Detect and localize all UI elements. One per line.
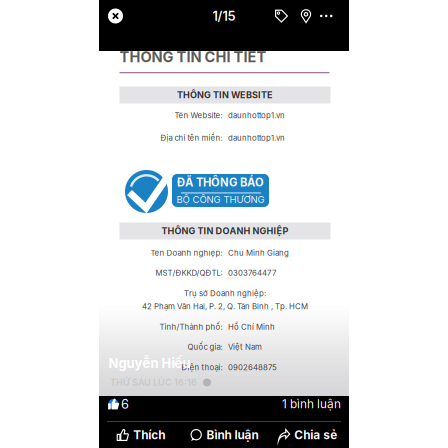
staticText: THỨ SÁU LÚC 16:16	[110, 377, 197, 388]
button[interactable]: Bình luận	[182, 422, 266, 448]
staticText: THÔNG TIN CHI TIẾT	[119, 48, 266, 66]
staticText: Bình luận	[206, 428, 258, 442]
button[interactable]: Location	[298, 8, 314, 24]
staticText: MST/ĐKKD/QĐTL:	[155, 268, 222, 278]
staticText: daunhottop1.vn	[228, 111, 285, 120]
staticText: Hồ Chí Minh	[228, 322, 275, 332]
staticText: Nguyễn Hiếu	[108, 355, 190, 371]
staticText: ĐÃ THÔNG BÁO	[177, 176, 264, 189]
button[interactable]: More options	[319, 8, 337, 24]
staticText: 0303764477	[228, 268, 276, 278]
staticText: Trụ sở Doanh nghiệp:	[184, 289, 266, 298]
staticText: Tỉnh/Thành phố:	[159, 322, 222, 332]
staticText: BỘ CÔNG THƯƠNG	[176, 194, 264, 205]
staticText: daunhottop1.vn	[228, 133, 285, 143]
button[interactable]: Tags	[273, 8, 289, 24]
staticText: Điện thoại:	[181, 363, 222, 372]
staticText: THÔNG TIN DOANH NGHIỆP	[161, 225, 288, 236]
staticText: Quốc gia:	[187, 342, 222, 352]
staticText: Tên Website:	[174, 111, 222, 120]
staticText: 1/15	[212, 8, 235, 24]
staticText: Thích	[133, 428, 165, 442]
staticText: Tên Doanh nghiệp:	[150, 248, 222, 258]
staticText: 1 bình luận	[282, 397, 341, 411]
staticText: THÔNG TIN WEBSITE	[177, 89, 273, 100]
staticText: Chu Minh Giang	[228, 248, 289, 258]
staticText: 6	[121, 396, 129, 412]
staticText: Chia sẻ	[294, 428, 337, 442]
staticText: 0902648875	[228, 363, 277, 372]
button[interactable]: Thích	[99, 422, 182, 448]
staticText: Việt Nam	[228, 342, 262, 352]
button[interactable]: Chia sẻ	[266, 422, 349, 448]
staticText: 42 Phạm Văn Hai, P. 2, Q. Tân Bình , Tp.…	[142, 302, 308, 311]
staticText: Địa chỉ tên miền:	[160, 133, 222, 143]
button[interactable]: Close	[108, 8, 123, 23]
